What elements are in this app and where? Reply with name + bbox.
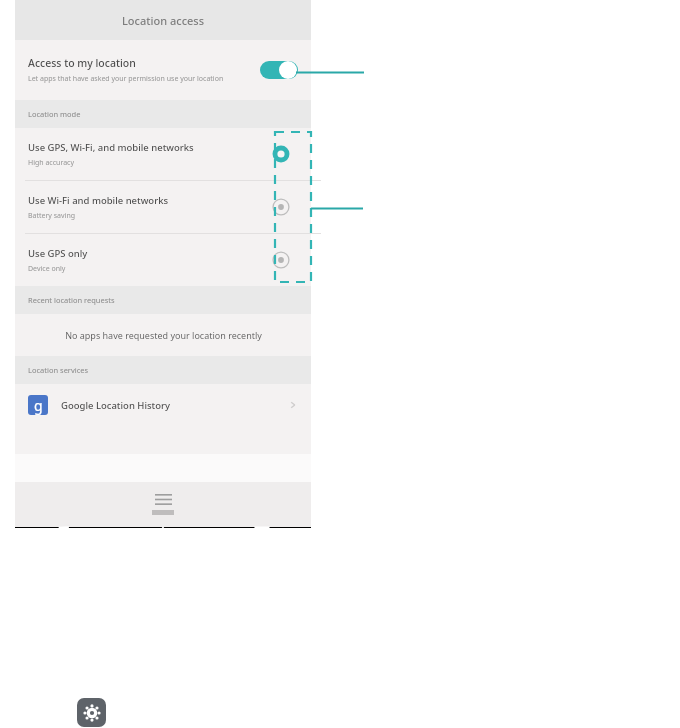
button[interactable]: Use Wi-Fi and mobile networks	[15, 181, 311, 233]
staticText: Location mode	[28, 109, 81, 119]
staticText: Location access	[122, 13, 205, 28]
staticText: Use GPS, Wi-Fi, and mobile networks	[28, 141, 194, 154]
staticText: Use Wi-Fi and mobile networks	[28, 194, 169, 207]
staticText: High accuracy	[28, 158, 75, 168]
staticText: Recent location requests	[28, 295, 115, 305]
staticText: No apps have requested your location rec…	[65, 329, 262, 341]
button[interactable]: Home	[113, 527, 212, 528]
button[interactable]: Access to my location toggle	[260, 60, 298, 80]
staticText: Let apps that have asked your permission…	[28, 74, 252, 84]
staticText: Use GPS only	[28, 247, 88, 260]
staticText: Google Location History	[61, 399, 288, 412]
button[interactable]: Settings	[77, 698, 106, 727]
staticText: Location services	[28, 365, 89, 375]
staticText: g	[34, 396, 43, 415]
button[interactable]: Use GPS only	[15, 234, 311, 286]
button[interactable]: g	[15, 384, 311, 426]
button[interactable]: Recents	[212, 527, 311, 528]
button[interactable]: Use GPS, Wi-Fi, and mobile networks	[15, 128, 311, 180]
staticText: Battery saving	[28, 211, 76, 221]
button[interactable]: Access to my location	[15, 40, 311, 100]
staticText: Device only	[28, 264, 66, 274]
button[interactable]: Back	[15, 527, 113, 528]
button[interactable]: Menu	[138, 491, 188, 518]
staticText: Access to my location	[28, 56, 136, 70]
